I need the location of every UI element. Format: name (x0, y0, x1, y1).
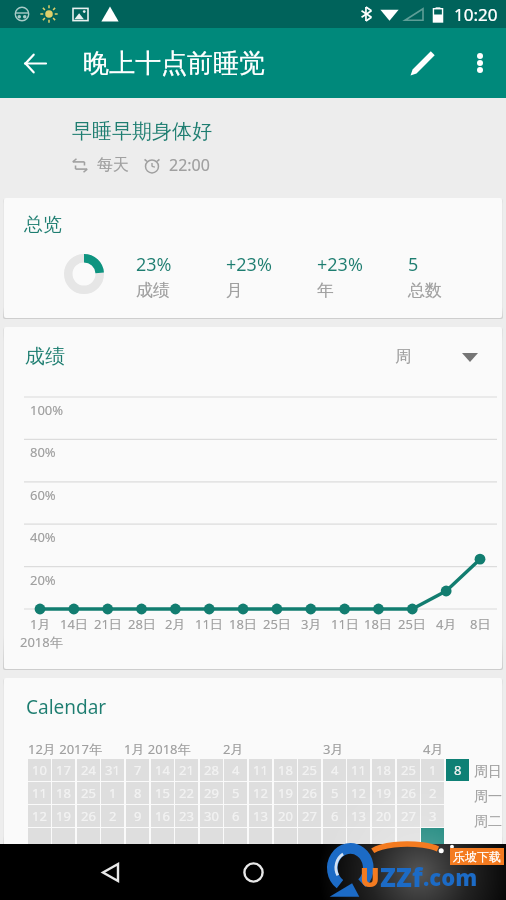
button[interactable]: Back (88, 850, 132, 894)
button[interactable]: 18 (372, 759, 395, 781)
button[interactable] (372, 828, 395, 850)
button[interactable]: 19 (52, 805, 75, 827)
button[interactable]: 13 (347, 805, 370, 827)
button[interactable]: 12 (28, 805, 51, 827)
button[interactable]: 6 (323, 805, 346, 827)
staticText: 4月 (423, 740, 444, 758)
staticText: 26 (302, 784, 317, 802)
button[interactable]: 25 (77, 782, 100, 804)
button[interactable]: 1 (421, 759, 444, 781)
staticText: 11 (32, 784, 47, 802)
button[interactable]: 19 (372, 782, 395, 804)
button[interactable]: Edit (400, 40, 446, 86)
button[interactable]: 31 (101, 759, 124, 781)
button[interactable] (175, 828, 198, 850)
button[interactable]: 19 (274, 782, 297, 804)
button[interactable]: 21 (175, 759, 198, 781)
button[interactable] (77, 828, 100, 850)
button[interactable] (397, 828, 420, 850)
button[interactable] (274, 828, 297, 850)
button[interactable]: 27 (298, 805, 321, 827)
button[interactable] (151, 828, 174, 850)
staticText: 11日 (195, 615, 223, 633)
staticText: 2月 (223, 740, 244, 758)
button[interactable]: 25 (298, 759, 321, 781)
button[interactable] (323, 828, 346, 850)
button[interactable]: 4 (224, 759, 247, 781)
staticText: 2018年 (20, 633, 63, 651)
staticText: 18 (56, 784, 71, 802)
button[interactable]: 11 (249, 759, 272, 781)
button[interactable]: 30 (200, 805, 223, 827)
button[interactable]: 8 (126, 782, 149, 804)
button[interactable] (52, 828, 75, 850)
button[interactable]: 18 (52, 782, 75, 804)
button[interactable]: 6 (224, 805, 247, 827)
button[interactable]: 2 (421, 782, 444, 804)
button[interactable]: Back (12, 40, 58, 86)
button[interactable]: More options (457, 40, 503, 86)
staticText: 25日 (263, 615, 291, 633)
button[interactable]: 16 (151, 805, 174, 827)
staticText: 60% (30, 486, 56, 504)
button[interactable] (200, 828, 223, 850)
button[interactable]: 20 (372, 805, 395, 827)
button[interactable]: 13 (249, 805, 272, 827)
button[interactable] (347, 828, 370, 850)
button[interactable]: 29 (200, 782, 223, 804)
staticText: 成绩 (25, 344, 65, 369)
button[interactable]: 24 (77, 759, 100, 781)
staticText: 21 (179, 761, 194, 779)
button[interactable]: 10 (28, 759, 51, 781)
staticText: 14日 (60, 615, 88, 633)
button[interactable]: 5 (323, 782, 346, 804)
button[interactable]: 7 (126, 759, 149, 781)
button[interactable]: 15 (151, 782, 174, 804)
staticText: 8 (134, 784, 142, 802)
button[interactable]: 26 (298, 782, 321, 804)
staticText: 3月 (323, 740, 344, 758)
button[interactable]: 25 (397, 759, 420, 781)
staticText: 18日 (364, 615, 392, 633)
button[interactable] (421, 828, 444, 850)
button[interactable]: 14 (151, 759, 174, 781)
button[interactable]: Home (231, 850, 275, 894)
button[interactable]: 27 (397, 805, 420, 827)
staticText: 8日 (470, 615, 491, 633)
button[interactable]: 22 (175, 782, 198, 804)
button[interactable]: 23 (175, 805, 198, 827)
button[interactable]: 12 (249, 782, 272, 804)
button[interactable] (101, 828, 124, 850)
button[interactable]: 11 (347, 759, 370, 781)
staticText: 13 (351, 807, 366, 825)
button[interactable]: 1 (101, 782, 124, 804)
button[interactable]: 周 (387, 339, 486, 375)
button[interactable]: 18 (274, 759, 297, 781)
staticText: 11 (351, 761, 366, 779)
button[interactable]: 17 (52, 759, 75, 781)
button[interactable] (126, 828, 149, 850)
button[interactable]: 2 (101, 805, 124, 827)
staticText: 6 (331, 807, 339, 825)
staticText: 19 (376, 784, 391, 802)
button[interactable]: 20 (274, 805, 297, 827)
button[interactable] (28, 828, 51, 850)
button[interactable]: 12 (347, 782, 370, 804)
button[interactable]: 11 (28, 782, 51, 804)
button[interactable]: 28 (200, 759, 223, 781)
staticText: 20 (376, 807, 391, 825)
button[interactable]: 5 (224, 782, 247, 804)
button[interactable]: 3 (421, 805, 444, 827)
button[interactable] (249, 828, 272, 850)
button[interactable]: 8 (446, 759, 469, 781)
staticText: 22 (179, 784, 194, 802)
button[interactable] (224, 828, 247, 850)
button[interactable] (298, 828, 321, 850)
staticText: 1月 2018年 (124, 740, 191, 758)
staticText: 14 (155, 761, 170, 779)
button[interactable]: 4 (323, 759, 346, 781)
staticText: 6 (232, 807, 240, 825)
button[interactable]: 26 (397, 782, 420, 804)
button[interactable]: 9 (126, 805, 149, 827)
button[interactable]: 26 (77, 805, 100, 827)
